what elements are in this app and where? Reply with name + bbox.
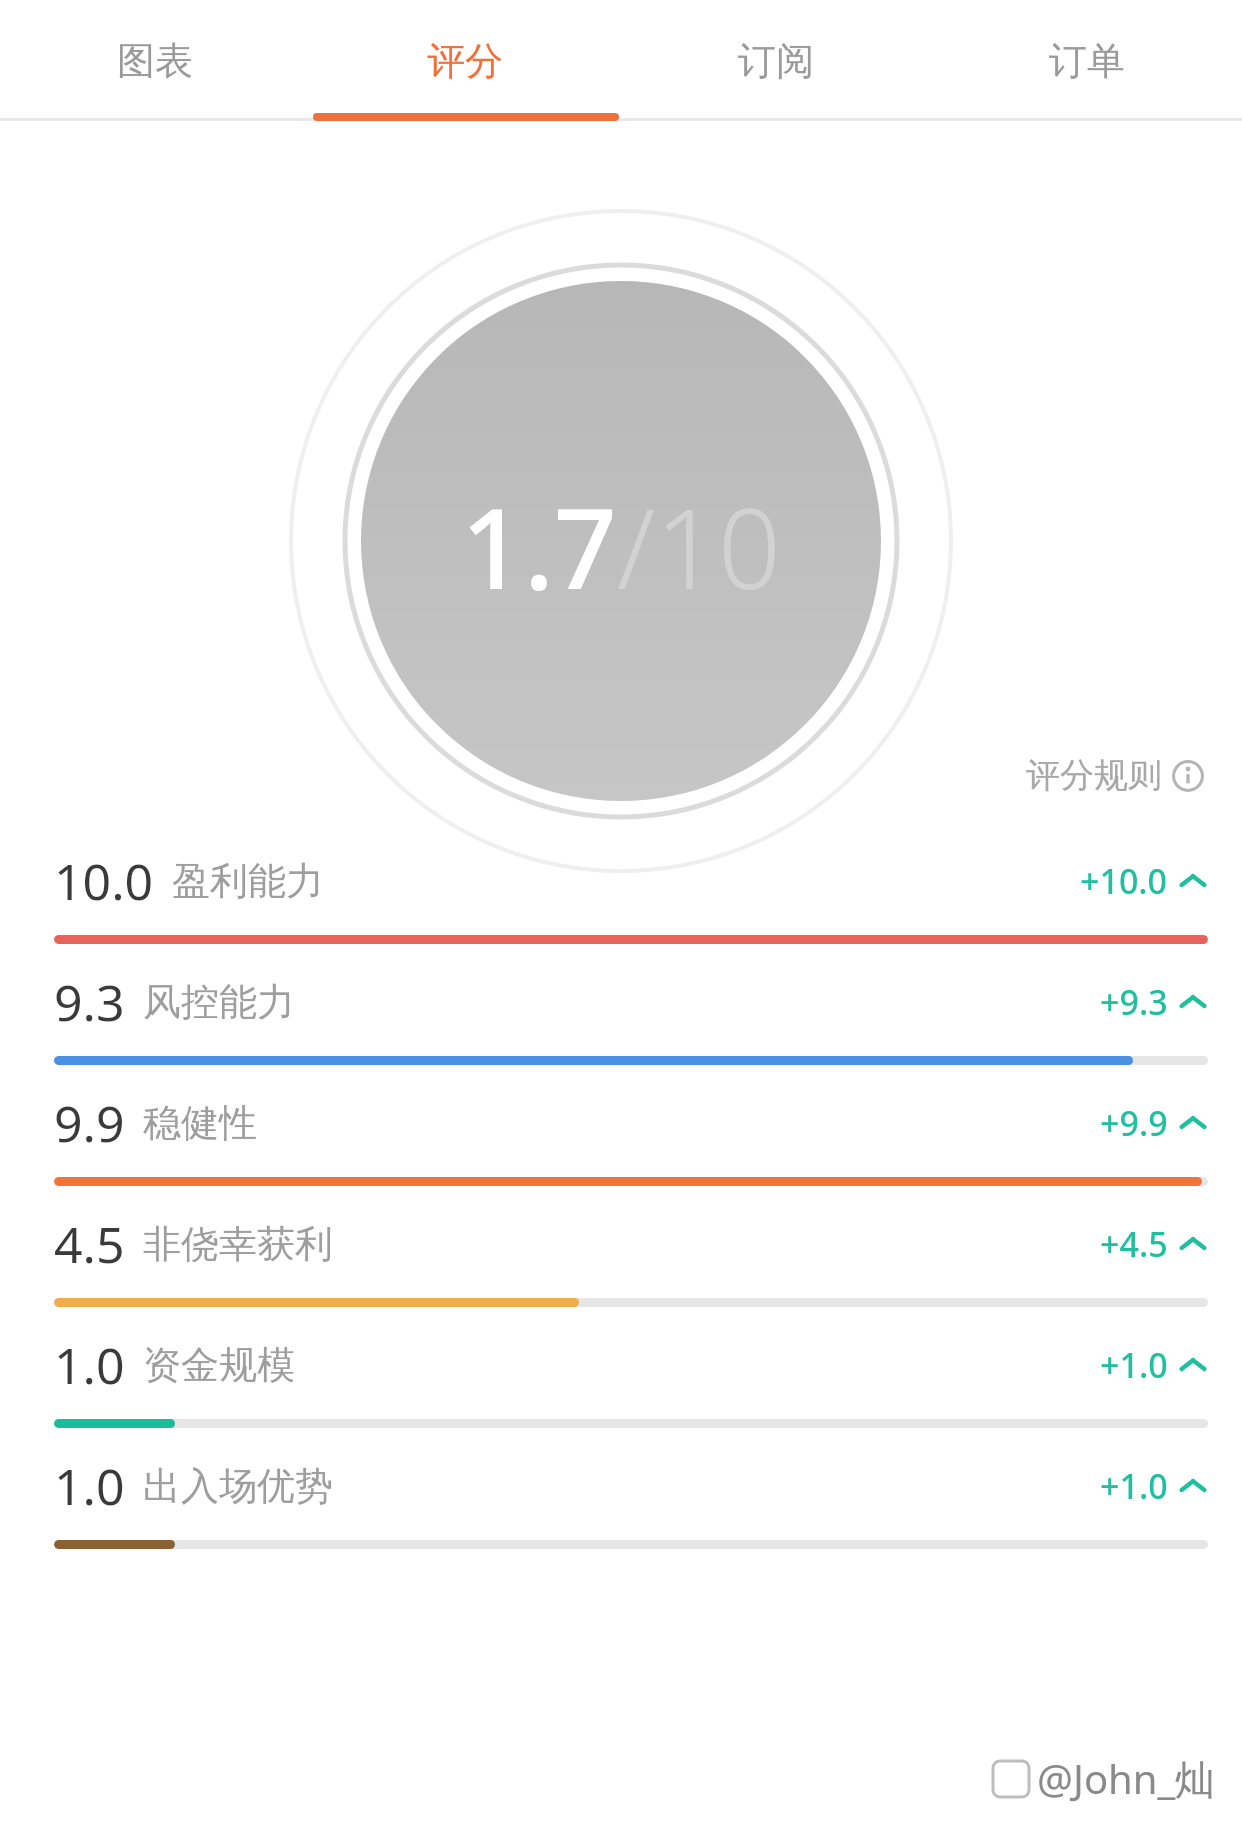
staticText: 出入场优势	[143, 1462, 333, 1510]
button[interactable]: 评分规则	[1018, 746, 1212, 805]
button[interactable]: 10.0	[0, 823, 1242, 944]
staticText: 9.9	[54, 1089, 125, 1157]
staticText: 1.0	[54, 1331, 125, 1399]
staticText: 盈利能力	[172, 857, 324, 905]
staticText: 9.3	[54, 968, 125, 1036]
button[interactable]: 1.0	[0, 1307, 1242, 1428]
staticText: 图表	[117, 37, 193, 85]
button[interactable]: 1.0	[0, 1428, 1242, 1549]
staticText: +4.5	[1100, 1221, 1168, 1267]
other: Increase	[1178, 1471, 1208, 1501]
button[interactable]: 订阅	[620, 0, 931, 121]
button[interactable]: 图表	[0, 0, 310, 121]
staticText: +1.0	[1100, 1463, 1168, 1509]
staticText: +10.0	[1080, 858, 1168, 904]
staticText: +9.9	[1100, 1100, 1168, 1146]
button[interactable]: 评分	[310, 0, 620, 121]
staticText: 稳健性	[143, 1099, 257, 1147]
staticText: 资金规模	[143, 1341, 295, 1389]
button[interactable]: 9.9	[0, 1065, 1242, 1186]
staticText: 10.0	[54, 847, 154, 915]
staticText: +1.0	[1100, 1342, 1168, 1388]
staticText: 非侥幸获利	[143, 1220, 333, 1268]
button[interactable]: 订单	[931, 0, 1242, 121]
staticText: @John_灿	[1037, 1751, 1216, 1806]
staticText: 订单	[1049, 37, 1125, 85]
other: Increase	[1178, 1229, 1208, 1259]
staticText: +9.3	[1100, 979, 1168, 1025]
staticText: /10	[617, 471, 781, 621]
staticText: 订阅	[738, 37, 814, 85]
staticText: 1.0	[54, 1452, 125, 1520]
other: Increase	[1178, 866, 1208, 896]
staticText: 4.5	[54, 1210, 125, 1278]
button[interactable]: 9.3	[0, 944, 1242, 1065]
other: Increase	[1178, 1350, 1208, 1380]
other: Increase	[1178, 987, 1208, 1017]
other: Increase	[1178, 1108, 1208, 1138]
staticText: 1.7	[461, 471, 617, 621]
staticText: 评分	[427, 37, 503, 85]
staticText: 风控能力	[143, 978, 295, 1026]
staticText: 评分规则	[1026, 754, 1162, 797]
button[interactable]: 4.5	[0, 1186, 1242, 1307]
